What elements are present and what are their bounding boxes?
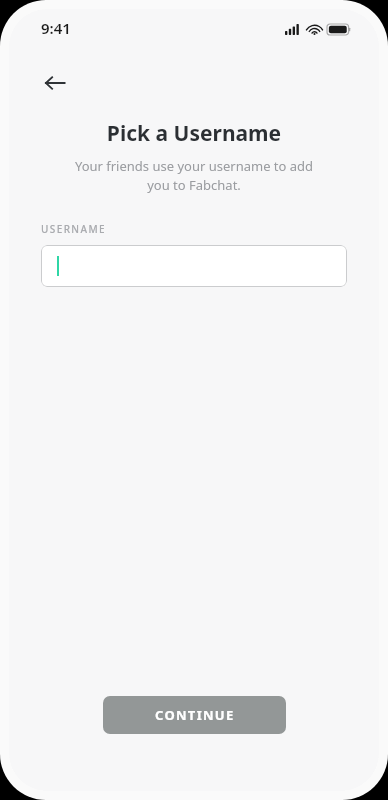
staticText: 9:41 — [41, 18, 71, 38]
button[interactable]: Back — [33, 61, 77, 105]
staticText: Your friends use your username to add yo… — [49, 157, 339, 194]
staticText: Pick a Username — [9, 119, 379, 148]
button[interactable]: Username input — [41, 245, 347, 287]
staticText: CONTINUE — [155, 706, 235, 724]
staticText: USERNAME — [41, 222, 107, 236]
button[interactable]: CONTINUE — [103, 696, 286, 734]
